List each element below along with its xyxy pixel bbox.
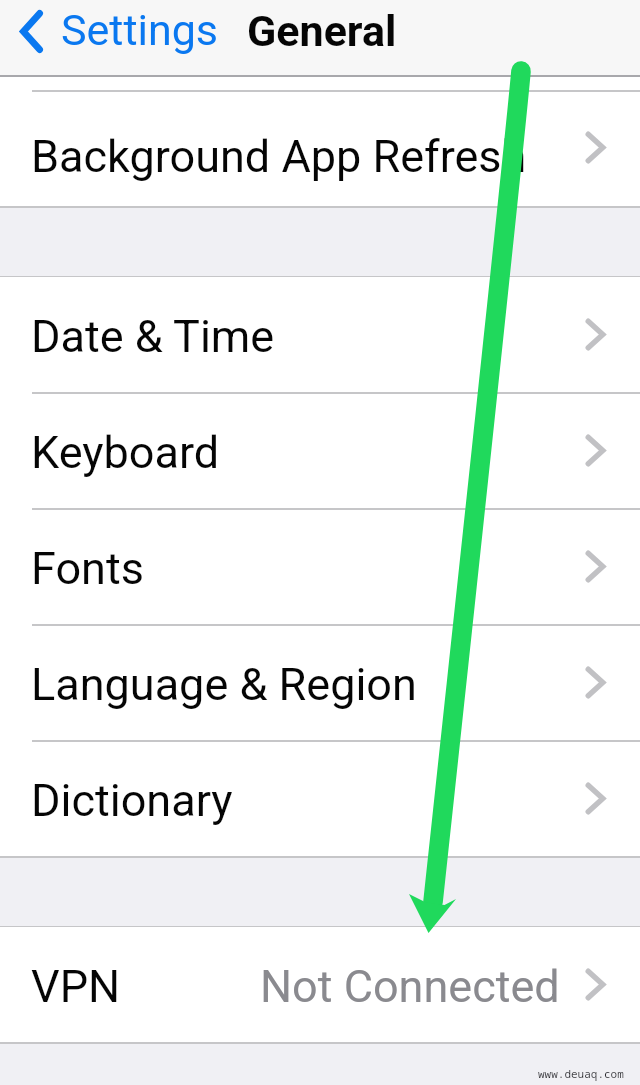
staticText: Language & Region [31,658,417,711]
other: Open Language & Region [585,666,606,699]
button[interactable]: Background App Refresh [0,77,640,206]
staticText: Keyboard [31,426,220,479]
button[interactable]: VPN [0,926,640,1042]
staticText: www.deuaq.com [538,1066,624,1081]
staticText: Fonts [31,542,144,595]
staticText: Not Connected [260,960,560,1013]
staticText: General [247,6,397,56]
staticText: Settings [61,5,219,55]
other: Open Keyboard [585,434,606,467]
other: Open Fonts [585,550,606,583]
other: Open Date & Time [585,318,606,351]
staticText: Background App Refresh [31,130,527,183]
button[interactable]: Back to Settings [16,14,219,64]
other: Open VPN [585,968,606,1001]
staticText: Dictionary [31,774,233,827]
button[interactable]: Fonts [0,508,640,624]
button[interactable]: Language & Region [0,624,640,740]
other: Back to Settings [20,10,43,53]
other: Open Dictionary [585,782,606,815]
button[interactable]: Dictionary [0,740,640,856]
staticText: VPN [31,960,121,1013]
button[interactable]: Keyboard [0,392,640,508]
other: Open Background App Refresh [585,131,606,164]
other: Annotation arrow pointing at VPN [0,0,640,1085]
button[interactable]: Date & Time [0,276,640,392]
staticText: Date & Time [31,310,275,363]
